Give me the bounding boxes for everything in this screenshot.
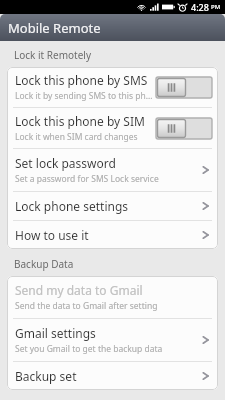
staticText: Lock phone settings [15, 198, 129, 214]
button[interactable]: Toggle switch, off [156, 77, 212, 98]
staticText: How to use it [15, 227, 89, 243]
staticText: Set you Gmail to get the backup data [15, 343, 163, 355]
staticText: Send the data to Gmail after setting [15, 300, 158, 312]
button[interactable]: Lock this phone by SIM [7, 108, 218, 148]
staticText: Lock it when SIM card changes [15, 131, 138, 143]
button[interactable]: Toggle switch, off [156, 118, 212, 139]
staticText: Send my data to Gmail [15, 282, 143, 298]
staticText: Lock this phone by SMS [15, 72, 148, 88]
staticText: Mobile Remote [8, 19, 101, 37]
button[interactable]: How to use it [7, 221, 218, 249]
button[interactable]: Backup set [7, 362, 218, 390]
button[interactable]: Lock this phone by SMS [7, 67, 218, 107]
staticText: Gmail settings [15, 325, 96, 341]
staticText: Lock it by sending SMS to this phone [15, 90, 153, 102]
button[interactable]: Gmail settings [7, 319, 218, 361]
staticText: Set lock password [15, 155, 116, 171]
staticText: Lock this phone by SIM [15, 113, 145, 129]
button[interactable]: Lock phone settings [7, 192, 218, 220]
staticText: Backup Data [14, 257, 74, 271]
staticText: PM [211, 3, 221, 11]
staticText: Lock it Remotely [14, 48, 92, 62]
button[interactable]: Send my data to Gmail [7, 276, 218, 318]
staticText: Backup set [15, 368, 77, 384]
button[interactable]: Set lock password [7, 149, 218, 191]
staticText: 4:28 [191, 1, 209, 13]
staticText: Set a password for SMS Lock service [15, 173, 159, 185]
